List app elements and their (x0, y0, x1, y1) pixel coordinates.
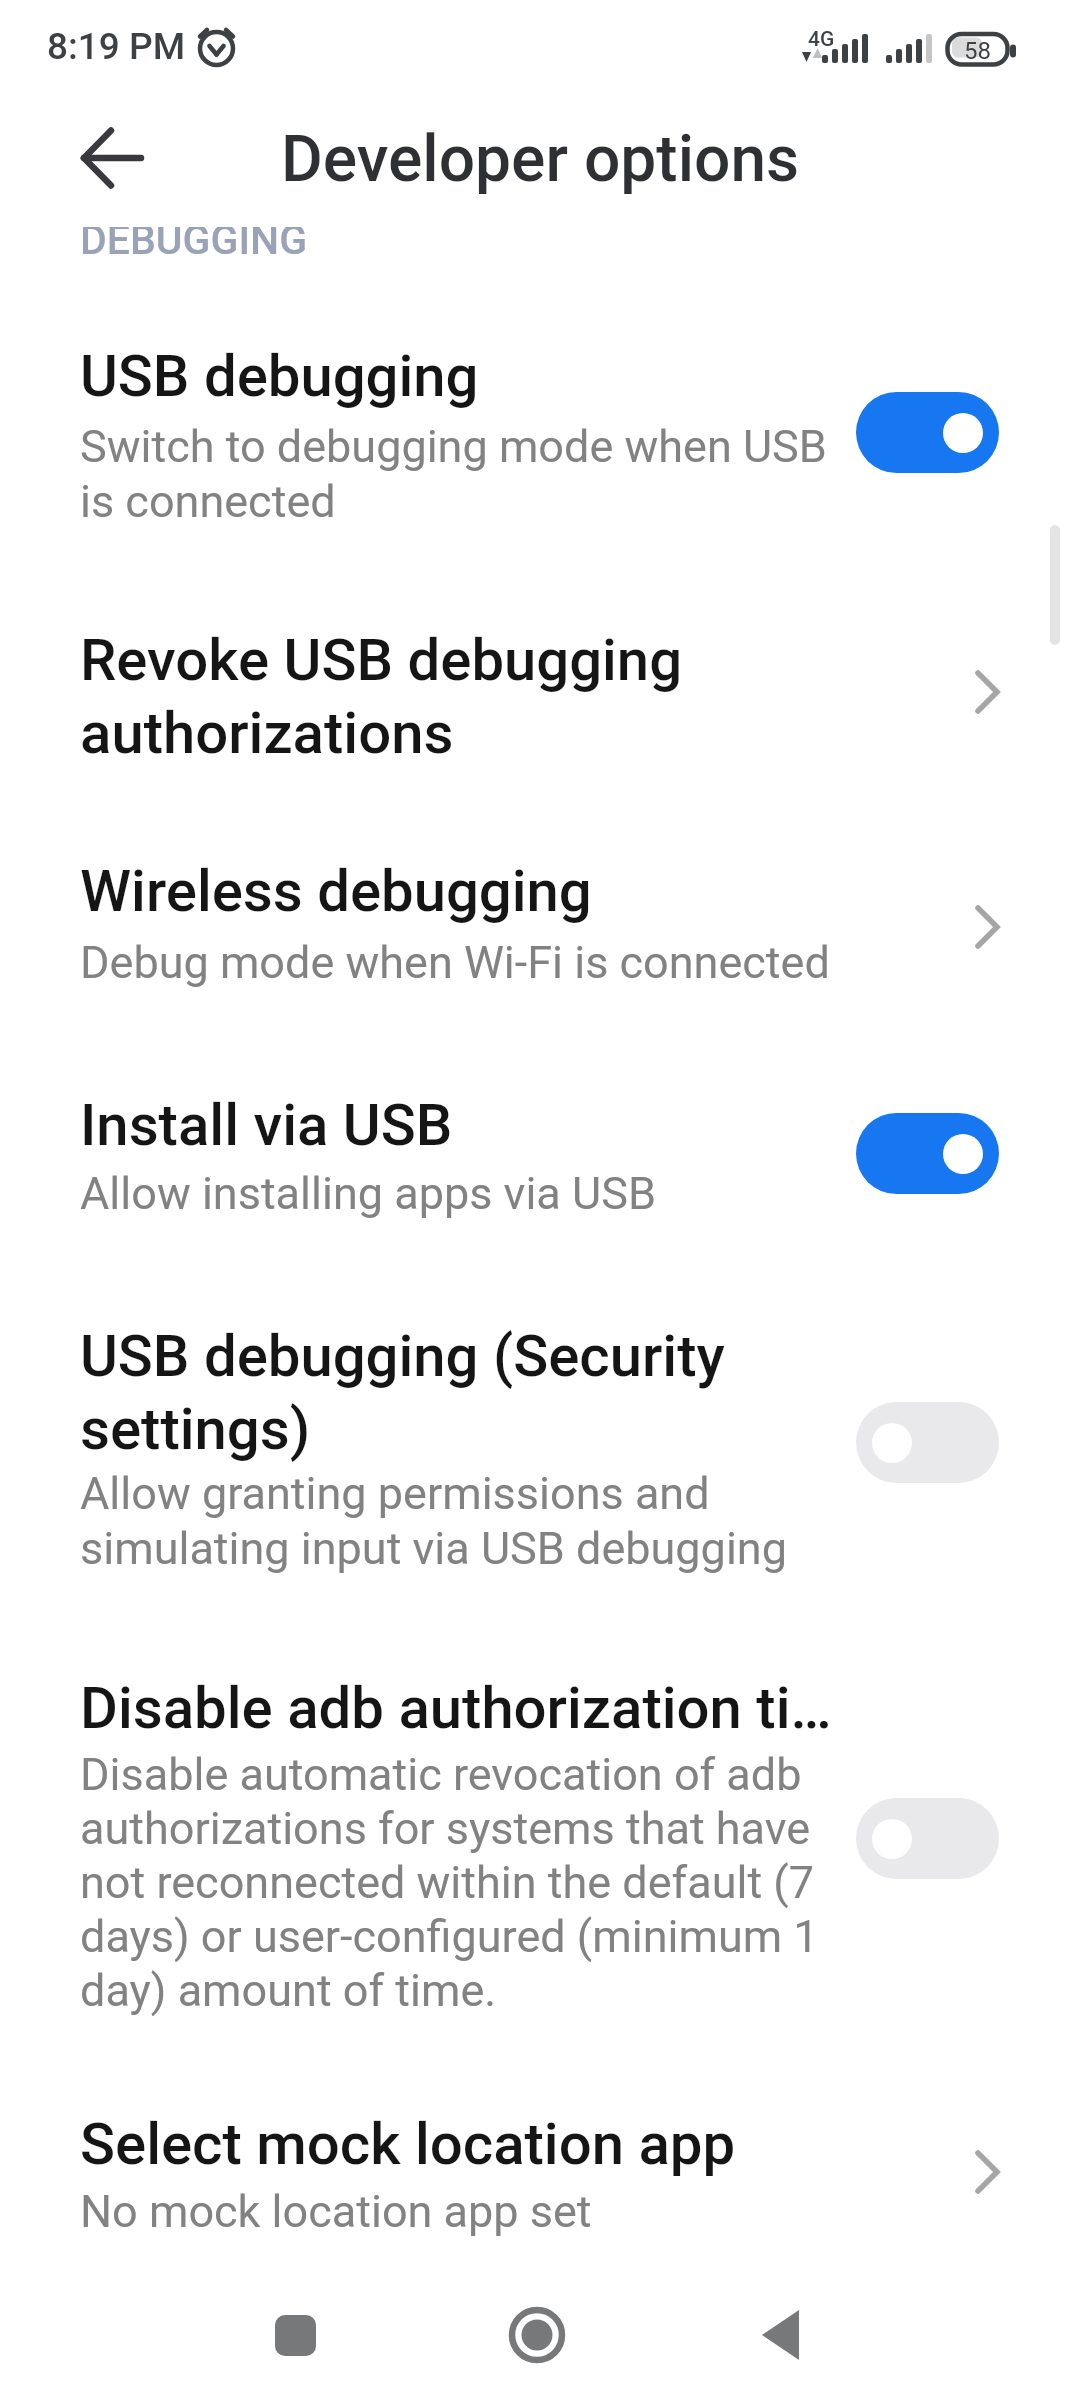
button[interactable] (0, 2095, 1080, 2255)
button[interactable] (0, 320, 1080, 535)
staticText: Disable adb authorization ti… (80, 1674, 832, 1742)
button[interactable] (482, 2290, 592, 2380)
button[interactable] (856, 1113, 999, 1194)
button[interactable] (856, 392, 999, 473)
button[interactable] (856, 1402, 999, 1483)
button[interactable] (240, 2290, 350, 2380)
staticText: Debug mode when Wi-Fi is connected (80, 936, 830, 989)
staticText: DEBUGGING (80, 216, 308, 264)
staticText: Disable automatic revocation of adb auth… (80, 1748, 819, 2017)
button[interactable] (0, 845, 1080, 1005)
staticText: 58 (964, 37, 991, 65)
staticText: Revoke USB debugging authorizations (80, 626, 683, 767)
button[interactable] (0, 1075, 1080, 1230)
staticText: 4G (808, 27, 835, 52)
staticText: Allow installing apps via USB (80, 1167, 656, 1220)
staticText: USB debugging (Security settings) (80, 1322, 725, 1463)
staticText: No mock location app set (80, 2185, 592, 2238)
button[interactable] (0, 1655, 1080, 2025)
button[interactable] (50, 110, 170, 205)
button[interactable] (856, 1798, 999, 1879)
button[interactable] (0, 600, 1080, 795)
button[interactable] (726, 2290, 836, 2380)
staticText: USB debugging (80, 342, 479, 410)
button[interactable] (0, 1300, 1080, 1600)
staticText: Wireless debugging (80, 857, 592, 925)
staticText: Switch to debugging mode when USB is con… (80, 420, 827, 528)
staticText: Allow granting permissions and simulatin… (80, 1467, 787, 1575)
staticText: Developer options (0, 122, 1080, 197)
staticText: Select mock location app (80, 2110, 736, 2178)
staticText: 8:19 PM (47, 25, 186, 68)
staticText: Install via USB (80, 1091, 453, 1159)
